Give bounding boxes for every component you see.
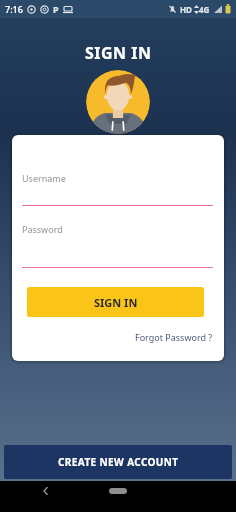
button[interactable]: Forgot Password ? <box>135 331 213 343</box>
button[interactable]: SIGN IN <box>27 287 204 317</box>
button[interactable]: CREATE NEW ACCOUNT <box>4 445 232 479</box>
staticText: 7:16 <box>5 3 23 15</box>
staticText: Password <box>22 223 63 235</box>
staticText: SIGN IN <box>85 42 152 64</box>
staticText: SIGN IN <box>94 295 138 310</box>
button[interactable] <box>109 488 127 494</box>
staticText: HD <box>180 4 192 15</box>
staticText: 4G <box>199 4 210 15</box>
staticText: P <box>53 3 59 15</box>
staticText: CREATE NEW ACCOUNT <box>58 455 179 469</box>
button[interactable] <box>40 485 52 497</box>
staticText: Username <box>22 172 66 184</box>
